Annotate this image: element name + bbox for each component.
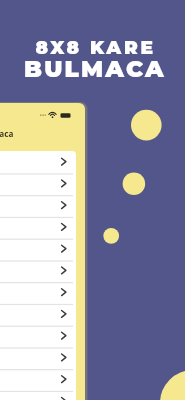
button[interactable]: Open puzzle [0,393,76,400]
button[interactable]: Open puzzle [0,283,76,305]
button[interactable]: Open puzzle [0,261,76,283]
button[interactable]: Open puzzle [0,371,76,393]
button[interactable]: Open puzzle [0,217,76,239]
button[interactable]: Open puzzle [0,239,76,261]
button[interactable]: Open puzzle [0,305,76,327]
button[interactable]: Open puzzle [0,195,76,217]
staticText: 8X8 KARE [35,36,156,59]
button[interactable]: Open puzzle [0,327,76,349]
button[interactable]: Open puzzle [0,173,76,195]
staticText: 8x8 Kare Bulmaca [0,128,14,139]
button[interactable]: Open puzzle [0,349,76,371]
staticText: BULMACA [24,55,166,83]
button[interactable]: Open puzzle [0,151,76,173]
